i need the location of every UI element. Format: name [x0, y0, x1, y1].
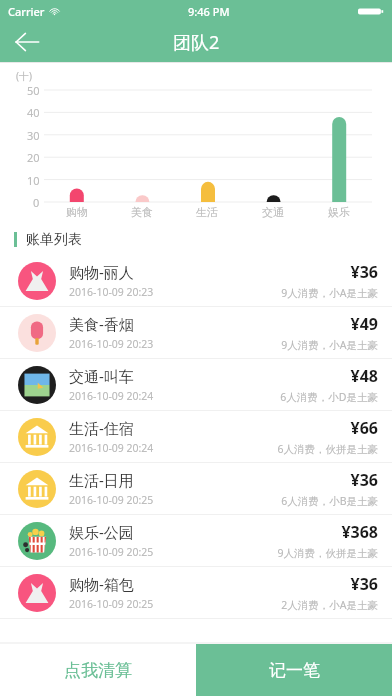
staticText: ¥36 — [350, 261, 378, 283]
staticText: 购物 — [66, 205, 88, 219]
staticText: 生活-日用 — [69, 470, 134, 490]
staticText: 购物-箱包 — [69, 574, 134, 594]
staticText: 记一笔 — [269, 660, 320, 681]
staticText: 美食-香烟 — [69, 314, 134, 334]
staticText: 30 — [27, 128, 40, 143]
staticText: 生活 — [196, 205, 218, 219]
staticText: Carrier — [8, 4, 45, 19]
staticText: 9人消费，小A是土豪 — [281, 286, 378, 300]
button[interactable]: 购物-丽人 — [0, 255, 392, 306]
staticText: 2016-10-09 20:23 — [69, 337, 154, 351]
staticText: ¥368 — [341, 521, 378, 543]
staticText: 9:46 PM — [188, 4, 230, 19]
staticText: (十) — [16, 69, 32, 83]
staticText: 生活-住宿 — [69, 418, 134, 438]
staticText: ¥36 — [350, 573, 378, 595]
staticText: 40 — [27, 105, 40, 120]
staticText: 2016-10-09 20:24 — [69, 389, 154, 403]
staticText: 团队2 — [173, 30, 220, 55]
button[interactable]: 生活-住宿 — [0, 411, 392, 462]
staticText: 交通-叫车 — [69, 366, 134, 386]
staticText: 2016-10-09 20:25 — [69, 545, 154, 559]
staticText: 2人消费，小A是土豪 — [281, 598, 378, 612]
staticText: ¥48 — [350, 365, 378, 387]
button[interactable]: Back — [0, 22, 54, 62]
staticText: 2016-10-09 20:23 — [69, 285, 154, 299]
staticText: 50 — [27, 83, 40, 98]
staticText: 6人消费，伙拼是土豪 — [277, 442, 378, 456]
button[interactable]: 购物-箱包 — [0, 567, 392, 618]
button[interactable]: 美食-香烟 — [0, 307, 392, 358]
staticText: 交通 — [262, 205, 284, 219]
staticText: 点我清算 — [64, 660, 132, 681]
button[interactable]: 交通-叫车 — [0, 359, 392, 410]
staticText: 美食 — [131, 205, 153, 219]
staticText: 购物-丽人 — [69, 262, 134, 282]
staticText: 9人消费，小A是土豪 — [281, 338, 378, 352]
staticText: 6人消费，小D是土豪 — [280, 390, 378, 404]
button[interactable]: 生活-日用 — [0, 463, 392, 514]
staticText: 10 — [27, 173, 40, 188]
staticText: 娱乐 — [328, 205, 350, 219]
staticText: 账单列表 — [26, 231, 82, 249]
staticText: 2016-10-09 20:25 — [69, 597, 154, 611]
button[interactable]: 娱乐-公园 — [0, 515, 392, 566]
staticText: 9人消费，伙拼是土豪 — [277, 546, 378, 560]
button[interactable]: 点我清算 — [0, 644, 196, 696]
staticText: 20 — [27, 150, 40, 165]
staticText: ¥66 — [350, 417, 378, 439]
button[interactable]: 记一笔 — [196, 644, 392, 696]
staticText: 0 — [33, 195, 40, 210]
staticText: 娱乐-公园 — [69, 522, 134, 542]
staticText: 2016-10-09 20:25 — [69, 493, 154, 507]
staticText: 2016-10-09 20:24 — [69, 441, 154, 455]
staticText: ¥36 — [350, 469, 378, 491]
staticText: 6人消费，小B是土豪 — [281, 494, 378, 508]
staticText: ¥49 — [350, 313, 378, 335]
